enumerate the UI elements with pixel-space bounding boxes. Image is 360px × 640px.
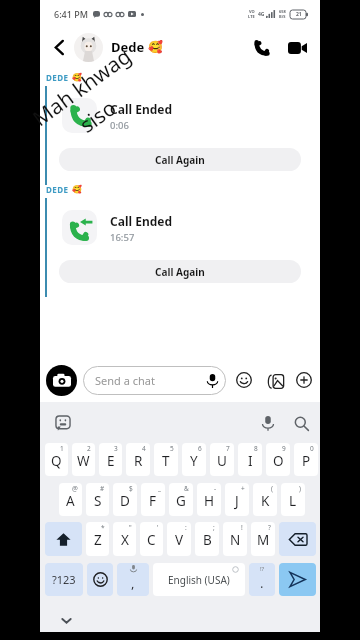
button[interactable]: Shift <box>45 522 82 556</box>
button[interactable]: 3 <box>99 443 122 476</box>
staticText: 658 <box>279 9 286 14</box>
button[interactable]: More options <box>294 370 314 390</box>
staticText: @ <box>72 484 78 493</box>
button[interactable]: " <box>113 522 136 556</box>
button[interactable]: Emoji keyboard <box>52 412 74 434</box>
button[interactable]: - <box>197 483 221 516</box>
staticText: Q <box>51 452 62 470</box>
staticText: 🥰 <box>72 73 82 82</box>
button[interactable]: 1 <box>45 443 68 476</box>
button[interactable]: Voice input <box>257 412 279 434</box>
staticText: N <box>230 531 241 549</box>
staticText: ' <box>157 523 159 532</box>
button[interactable]: Emoji <box>87 563 113 596</box>
staticText: . <box>260 574 264 592</box>
button[interactable]: @ <box>59 483 82 516</box>
staticText: Call Ended <box>110 213 173 229</box>
staticText: Call Ended <box>110 101 173 117</box>
staticText: " <box>129 523 132 532</box>
button[interactable]: , <box>117 563 149 596</box>
staticText: ) <box>299 484 301 493</box>
button[interactable]: Emoji <box>234 370 254 390</box>
button[interactable]: 8 <box>238 443 262 476</box>
staticText: * <box>101 523 105 532</box>
button[interactable]: Send <box>279 563 316 596</box>
button[interactable]: ) <box>281 483 305 516</box>
staticText: Send a chat <box>95 373 155 388</box>
button[interactable]: Search <box>290 412 312 434</box>
staticText: V <box>175 531 184 549</box>
staticText: 6 <box>198 444 202 453</box>
staticText: 4 <box>142 444 146 453</box>
staticText: 3 <box>114 444 118 453</box>
staticText: 7 <box>226 444 230 453</box>
button[interactable]: * <box>86 522 109 556</box>
button[interactable]: _ <box>141 483 165 516</box>
staticText: U <box>217 452 227 470</box>
staticText: ! <box>241 523 243 532</box>
staticText: - <box>214 484 217 493</box>
staticText: # <box>100 484 105 493</box>
staticText: ?123 <box>52 572 76 587</box>
button[interactable]: ' <box>140 522 163 556</box>
staticText: DEDE <box>46 72 69 83</box>
staticText: Dede <box>111 38 145 56</box>
button[interactable]: 5 <box>154 443 178 476</box>
button[interactable]: 0 <box>294 443 318 476</box>
button[interactable]: 9 <box>266 443 290 476</box>
button[interactable]: Send a chat <box>95 366 218 395</box>
staticText: B/S <box>279 14 286 19</box>
button[interactable]: Call Again <box>59 148 301 171</box>
staticText: ( <box>271 484 273 493</box>
staticText: + <box>241 484 245 493</box>
button[interactable]: & <box>169 483 193 516</box>
staticText: I <box>248 452 253 470</box>
staticText: J <box>235 492 239 510</box>
button[interactable]: ! <box>223 522 247 556</box>
staticText: 🥰 <box>148 40 163 54</box>
button[interactable]: ?123 <box>45 563 83 596</box>
staticText: !? <box>260 565 265 573</box>
button[interactable]: ; <box>195 522 219 556</box>
button[interactable]: ( <box>253 483 277 516</box>
staticText: ; <box>213 523 215 532</box>
staticText: 🥰 <box>72 185 82 194</box>
button[interactable]: Stickers <box>265 370 287 392</box>
staticText: F <box>149 492 157 510</box>
button[interactable]: Call <box>248 35 274 61</box>
staticText: B <box>203 531 212 549</box>
button[interactable]: Hide keyboard <box>55 609 77 631</box>
button[interactable]: # <box>86 483 109 516</box>
button[interactable]: $ <box>113 483 137 516</box>
staticText: C <box>147 531 156 549</box>
staticText: Y <box>190 452 198 470</box>
button[interactable]: !? <box>249 563 275 596</box>
staticText: Call Again <box>155 265 205 279</box>
staticText: siso <box>74 93 122 139</box>
button[interactable]: 4 <box>126 443 150 476</box>
button[interactable]: English (USA) <box>153 563 245 596</box>
staticText: G <box>176 492 186 510</box>
button[interactable]: 6 <box>182 443 206 476</box>
staticText: 16:57 <box>110 231 135 244</box>
button[interactable]: Video call <box>284 35 310 61</box>
staticText: 0 <box>310 444 314 453</box>
staticText: R <box>134 452 143 470</box>
button[interactable]: 2 <box>72 443 95 476</box>
button[interactable]: Back <box>46 34 72 60</box>
staticText: A <box>66 492 75 510</box>
button[interactable]: ? <box>251 522 275 556</box>
staticText: D <box>120 492 130 510</box>
staticText: 2 <box>87 444 91 453</box>
button[interactable]: Camera <box>46 365 77 396</box>
staticText: E <box>107 452 115 470</box>
staticText: 8 <box>254 444 258 453</box>
staticText: T <box>162 452 170 470</box>
staticText: M <box>257 531 270 549</box>
button[interactable]: Call Again <box>59 260 301 283</box>
button[interactable]: : <box>167 522 191 556</box>
button[interactable]: + <box>225 483 249 516</box>
button[interactable]: 7 <box>210 443 234 476</box>
staticText: : <box>185 523 187 532</box>
button[interactable]: Backspace <box>279 522 316 556</box>
